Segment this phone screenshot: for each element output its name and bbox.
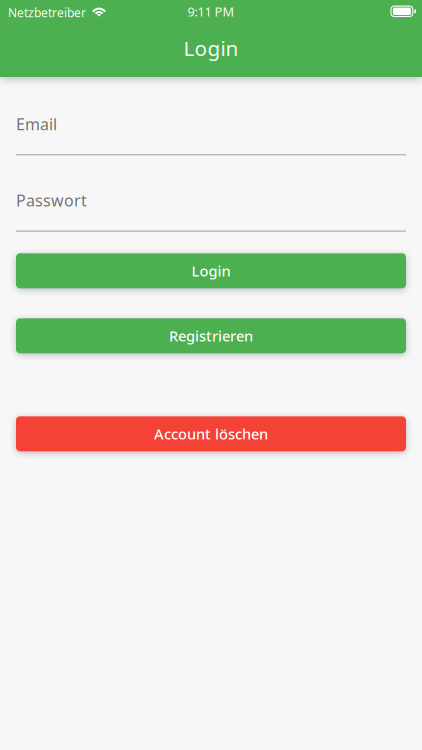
staticText: Passwort [16,189,87,211]
button[interactable]: Registrieren [16,318,406,353]
staticText: Login [191,261,230,281]
staticText: Email [16,113,57,135]
button[interactable]: Login [16,253,406,288]
staticText: Netzbetreiber [8,4,86,21]
button[interactable]: Email [16,117,406,155]
staticText: Account löschen [154,424,268,444]
button[interactable]: Account löschen [16,416,406,451]
staticText: Registrieren [169,326,253,346]
button[interactable]: Passwort [16,193,406,232]
staticText: 9:11 PM [187,3,234,20]
staticText: Login [183,34,238,62]
